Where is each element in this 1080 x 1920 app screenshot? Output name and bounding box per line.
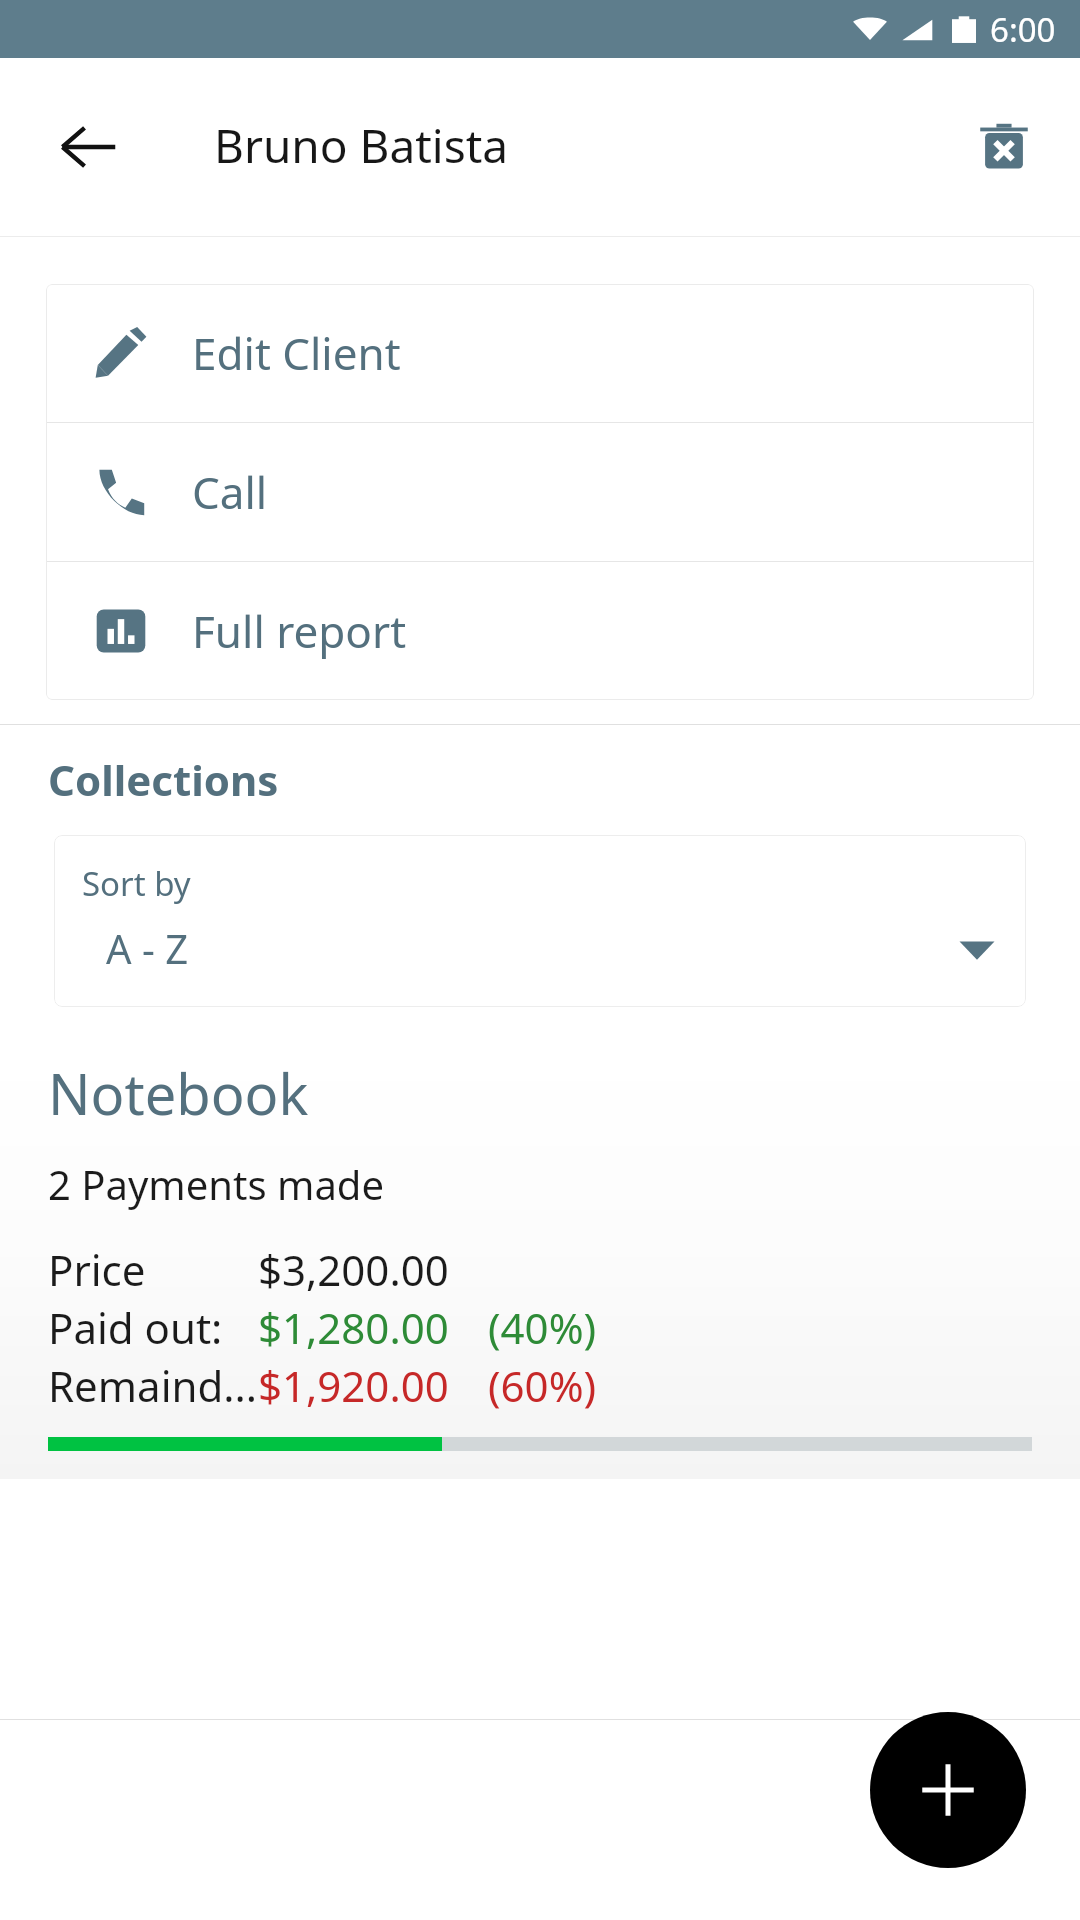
staticText: $1,280.00 [258,1299,449,1356]
button[interactable]: Call [46,423,1034,561]
staticText: $1,920.00 [258,1357,449,1414]
staticText: Bruno Batista [214,114,509,177]
staticText: Notebook [48,1055,309,1131]
button[interactable]: Add payment [870,1712,1026,1868]
staticText: (40%) [488,1299,597,1356]
staticText: (60%) [488,1357,597,1414]
staticText: A - Z [106,921,189,975]
staticText: Full report [192,601,407,661]
button[interactable]: Back [40,99,136,195]
staticText: $3,200.00 [258,1241,449,1298]
staticText: Call [192,462,268,522]
staticText: Remaind... [48,1357,258,1414]
staticText: Edit Client [192,323,401,383]
staticText: 6:00 [990,7,1056,52]
staticText: 2 Payments made [48,1157,384,1211]
button[interactable]: Sort by [54,835,1026,1007]
button[interactable]: Notebook [0,1049,1080,1479]
staticText: Sort by [82,861,191,906]
button[interactable]: Edit Client [46,284,1034,422]
staticText: Collections [48,751,279,808]
button[interactable]: Full report [46,562,1034,700]
staticText: Price [48,1241,146,1298]
staticText: Paid out: [48,1299,223,1356]
button[interactable]: Delete client [958,101,1050,193]
